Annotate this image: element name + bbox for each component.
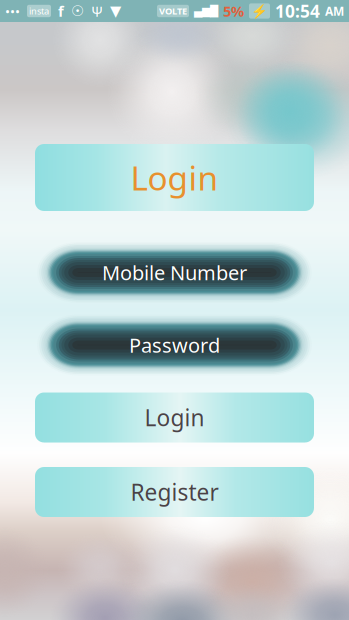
staticText: AM	[325, 3, 344, 19]
staticText: f	[58, 1, 64, 21]
staticText: Register	[130, 477, 218, 507]
staticText: 10:54	[275, 0, 320, 22]
staticText: Mobile Number	[102, 259, 247, 286]
staticText: Login	[144, 402, 204, 432]
button[interactable]: Password	[36, 314, 312, 376]
staticText: ▄▆█	[194, 5, 218, 17]
button[interactable]: Register	[35, 467, 314, 517]
staticText: insta	[29, 5, 49, 17]
staticText: Login	[130, 155, 218, 200]
staticText: ▼	[110, 3, 121, 19]
staticText: •••	[5, 2, 20, 20]
staticText: Ψ	[91, 1, 103, 21]
staticText: Password	[129, 332, 220, 358]
staticText: ☉	[71, 3, 84, 19]
button[interactable]: Mobile Number	[36, 241, 312, 303]
button[interactable]: Login	[35, 392, 314, 442]
staticText: ⚡	[251, 3, 268, 19]
staticText: VOLTE	[159, 5, 187, 17]
staticText: 5%	[223, 1, 244, 21]
